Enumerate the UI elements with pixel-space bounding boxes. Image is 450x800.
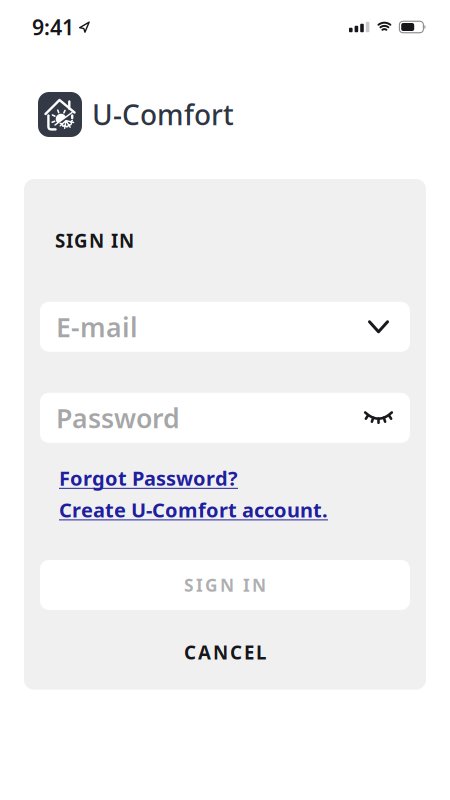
staticText: E-mail	[56, 309, 138, 344]
staticText: SIGN IN	[184, 573, 266, 596]
button[interactable]: Forgot Password?	[59, 465, 238, 491]
staticText: CANCEL	[184, 640, 266, 665]
staticText: Forgot Password?	[59, 465, 238, 491]
button[interactable]: SIGN IN	[40, 560, 410, 610]
staticText: U-Comfort	[92, 96, 234, 133]
staticText: SIGN IN	[55, 228, 134, 253]
staticText: 9:41	[32, 13, 74, 41]
button[interactable]: Create U-Comfort account.	[59, 496, 328, 523]
button[interactable]: Choose e-mail	[368, 320, 389, 333]
button[interactable]: Show password	[364, 411, 393, 424]
button[interactable]: Password	[40, 393, 410, 443]
button[interactable]: CANCEL	[40, 640, 410, 665]
staticText: Password	[56, 400, 180, 435]
button[interactable]: E-mail	[40, 302, 410, 352]
staticText: Create U-Comfort account.	[59, 496, 328, 523]
